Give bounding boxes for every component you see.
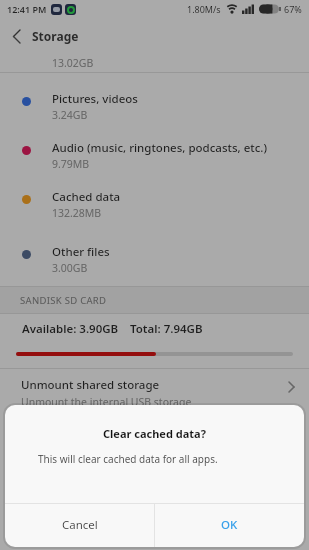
staticText: Audio (music, ringtones, podcasts, etc.) <box>52 140 268 156</box>
staticText: Unmount the internal USB storage <box>21 395 192 409</box>
staticText: 13.02GB <box>52 56 94 70</box>
staticText: Pictures, videos <box>52 91 138 107</box>
staticText: 12:41 PM <box>7 3 47 15</box>
button[interactable] <box>0 18 32 54</box>
button[interactable]: Unmount shared storage <box>0 369 309 550</box>
button[interactable]: Cancel <box>5 503 154 547</box>
staticText: SANDISK SD CARD <box>20 294 107 307</box>
button[interactable]: Pictures, videos <box>0 73 309 122</box>
staticText: Clear cached data? <box>103 426 206 441</box>
button[interactable]: Cached data <box>0 171 309 220</box>
staticText: Cached data <box>52 189 121 205</box>
button[interactable]: OK <box>155 503 304 547</box>
staticText: 132.28MB <box>52 206 102 220</box>
staticText: 1.80M/s <box>187 3 221 15</box>
staticText: Total: 7.94GB <box>130 321 203 337</box>
staticText: Other files <box>52 244 110 260</box>
button[interactable]: Audio (music, ringtones, podcasts, etc.) <box>0 122 309 171</box>
staticText: 67% <box>284 3 302 15</box>
staticText: This will clear cached data for all apps… <box>38 452 218 466</box>
staticText: Storage <box>32 28 79 44</box>
staticText: OK <box>221 517 238 533</box>
staticText: Available: 3.90GB <box>22 321 119 337</box>
staticText: 3.00GB <box>52 261 88 275</box>
button[interactable]: Other files <box>0 226 309 275</box>
staticText: 3.24GB <box>52 108 88 122</box>
staticText: Cancel <box>62 517 98 533</box>
staticText: 9.79MB <box>52 157 90 171</box>
staticText: Unmount shared storage <box>21 377 160 393</box>
